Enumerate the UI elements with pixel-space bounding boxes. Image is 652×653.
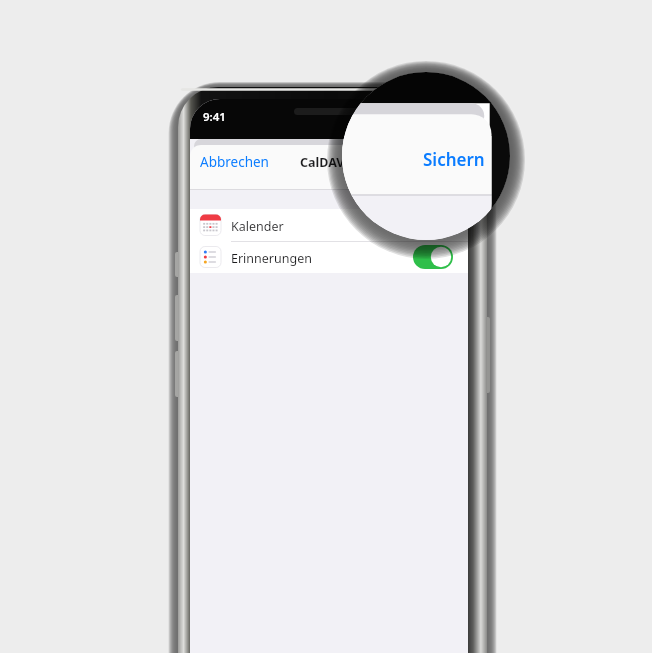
staticText: Kalender (231, 218, 284, 235)
button[interactable]: Erinnerungen (190, 241, 468, 273)
staticText: Sichern (423, 148, 485, 171)
button[interactable]: Kalender (190, 209, 468, 241)
staticText: 9:41 (203, 109, 226, 125)
button[interactable]: Abbrechen (195, 147, 277, 175)
staticText: Abbrechen (200, 153, 269, 171)
staticText: Erinnerungen (231, 250, 312, 267)
button[interactable]: Sichern (398, 142, 486, 172)
staticText: CalDAV (300, 154, 345, 171)
